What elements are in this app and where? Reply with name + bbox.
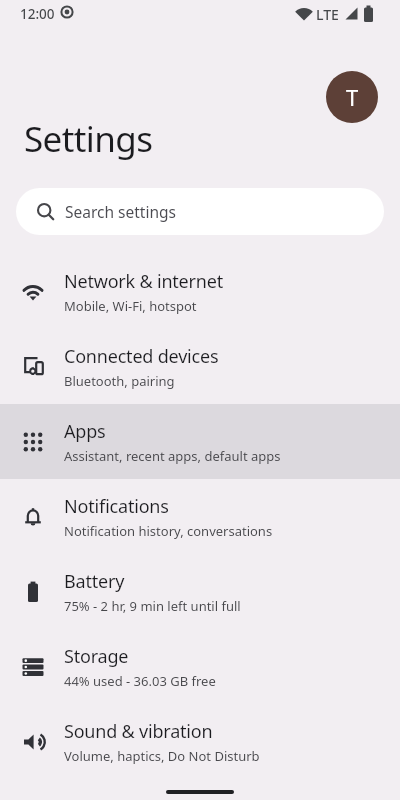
staticText: Volume, haptics, Do Not Disturb bbox=[64, 747, 260, 765]
staticText: Storage bbox=[64, 644, 129, 669]
staticText: 12:00 bbox=[20, 5, 55, 23]
button[interactable]: Sound & vibration bbox=[0, 704, 400, 779]
staticText: Battery bbox=[64, 569, 125, 594]
staticText: Mobile, Wi-Fi, hotspot bbox=[64, 297, 197, 315]
button[interactable]: Storage bbox=[0, 629, 400, 704]
staticText: LTE bbox=[316, 5, 339, 24]
staticText: Search settings bbox=[65, 201, 176, 222]
staticText: Settings bbox=[24, 115, 153, 163]
staticText: T bbox=[346, 82, 359, 112]
button[interactable]: Notifications bbox=[0, 479, 400, 554]
staticText: Apps bbox=[64, 419, 106, 444]
staticText: Network & internet bbox=[64, 269, 223, 294]
staticText: Bluetooth, pairing bbox=[64, 372, 175, 390]
staticText: Assistant, recent apps, default apps bbox=[64, 447, 281, 465]
staticText: Connected devices bbox=[64, 344, 219, 369]
staticText: 44% used - 36.03 GB free bbox=[64, 672, 216, 690]
staticText: Notification history, conversations bbox=[64, 522, 273, 540]
button[interactable]: Apps bbox=[0, 404, 400, 479]
button[interactable]: T bbox=[326, 71, 378, 123]
button[interactable]: Network & internet bbox=[0, 254, 400, 329]
staticText: 75% - 2 hr, 9 min left until full bbox=[64, 597, 241, 615]
button[interactable]: Battery bbox=[0, 554, 400, 629]
staticText: Sound & vibration bbox=[64, 719, 213, 744]
button[interactable]: Search settings bbox=[16, 188, 384, 235]
staticText: Notifications bbox=[64, 494, 169, 519]
button[interactable]: Connected devices bbox=[0, 329, 400, 404]
